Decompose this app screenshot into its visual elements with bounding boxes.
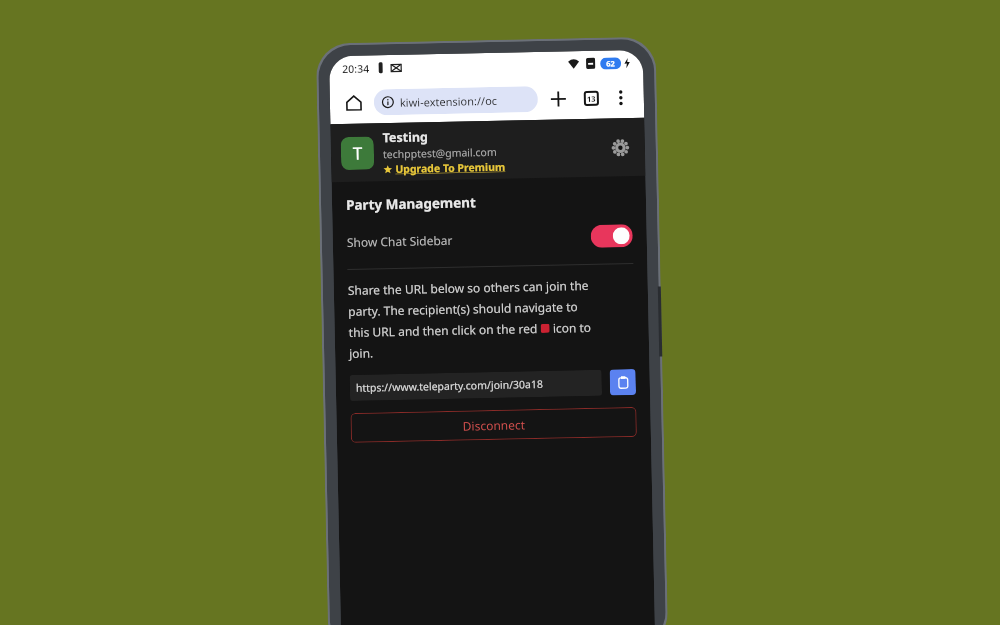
staticText: Disconnect <box>462 416 526 434</box>
button[interactable]: Home <box>340 88 368 117</box>
staticText: https://www.teleparty.com/join/30a18 <box>356 377 544 395</box>
button[interactable]: https://www.teleparty.com/join/30a18 <box>350 370 602 401</box>
staticText: Party Management <box>346 193 476 214</box>
staticText: techpptest@gmail.com <box>383 145 497 161</box>
button[interactable]: Disconnect <box>350 407 637 443</box>
staticText: this URL and then click on the red <box>348 320 541 340</box>
button[interactable]: Tabs <box>577 84 605 112</box>
button[interactable]: Show Chat Sidebar toggle <box>590 224 633 248</box>
button[interactable]: Upgrade To Premium <box>383 160 505 176</box>
staticText: Upgrade To Premium <box>395 160 505 176</box>
button[interactable]: New tab <box>544 84 572 113</box>
button[interactable]: More options <box>608 84 634 110</box>
staticText: join. <box>349 344 374 361</box>
staticText: Show Chat Sidebar <box>347 232 453 250</box>
staticText: 62 <box>606 58 615 69</box>
button[interactable]: Settings <box>605 132 635 163</box>
button[interactable]: T <box>330 118 645 182</box>
button[interactable]: Copy link <box>609 369 636 395</box>
staticText: Share the URL below so others can join t… <box>348 277 589 298</box>
staticText: T <box>353 142 363 165</box>
staticText: party. The recipient(s) should navigate … <box>348 298 578 319</box>
staticText: 13 <box>587 94 596 104</box>
button[interactable]: kiwi-extension://oc <box>374 86 538 115</box>
staticText: Testing <box>382 128 429 146</box>
staticText: icon to <box>549 319 592 336</box>
staticText: 20:34 <box>342 61 369 76</box>
staticText: kiwi-extension://oc <box>400 93 498 110</box>
button[interactable]: Show Chat Sidebar <box>332 220 647 257</box>
